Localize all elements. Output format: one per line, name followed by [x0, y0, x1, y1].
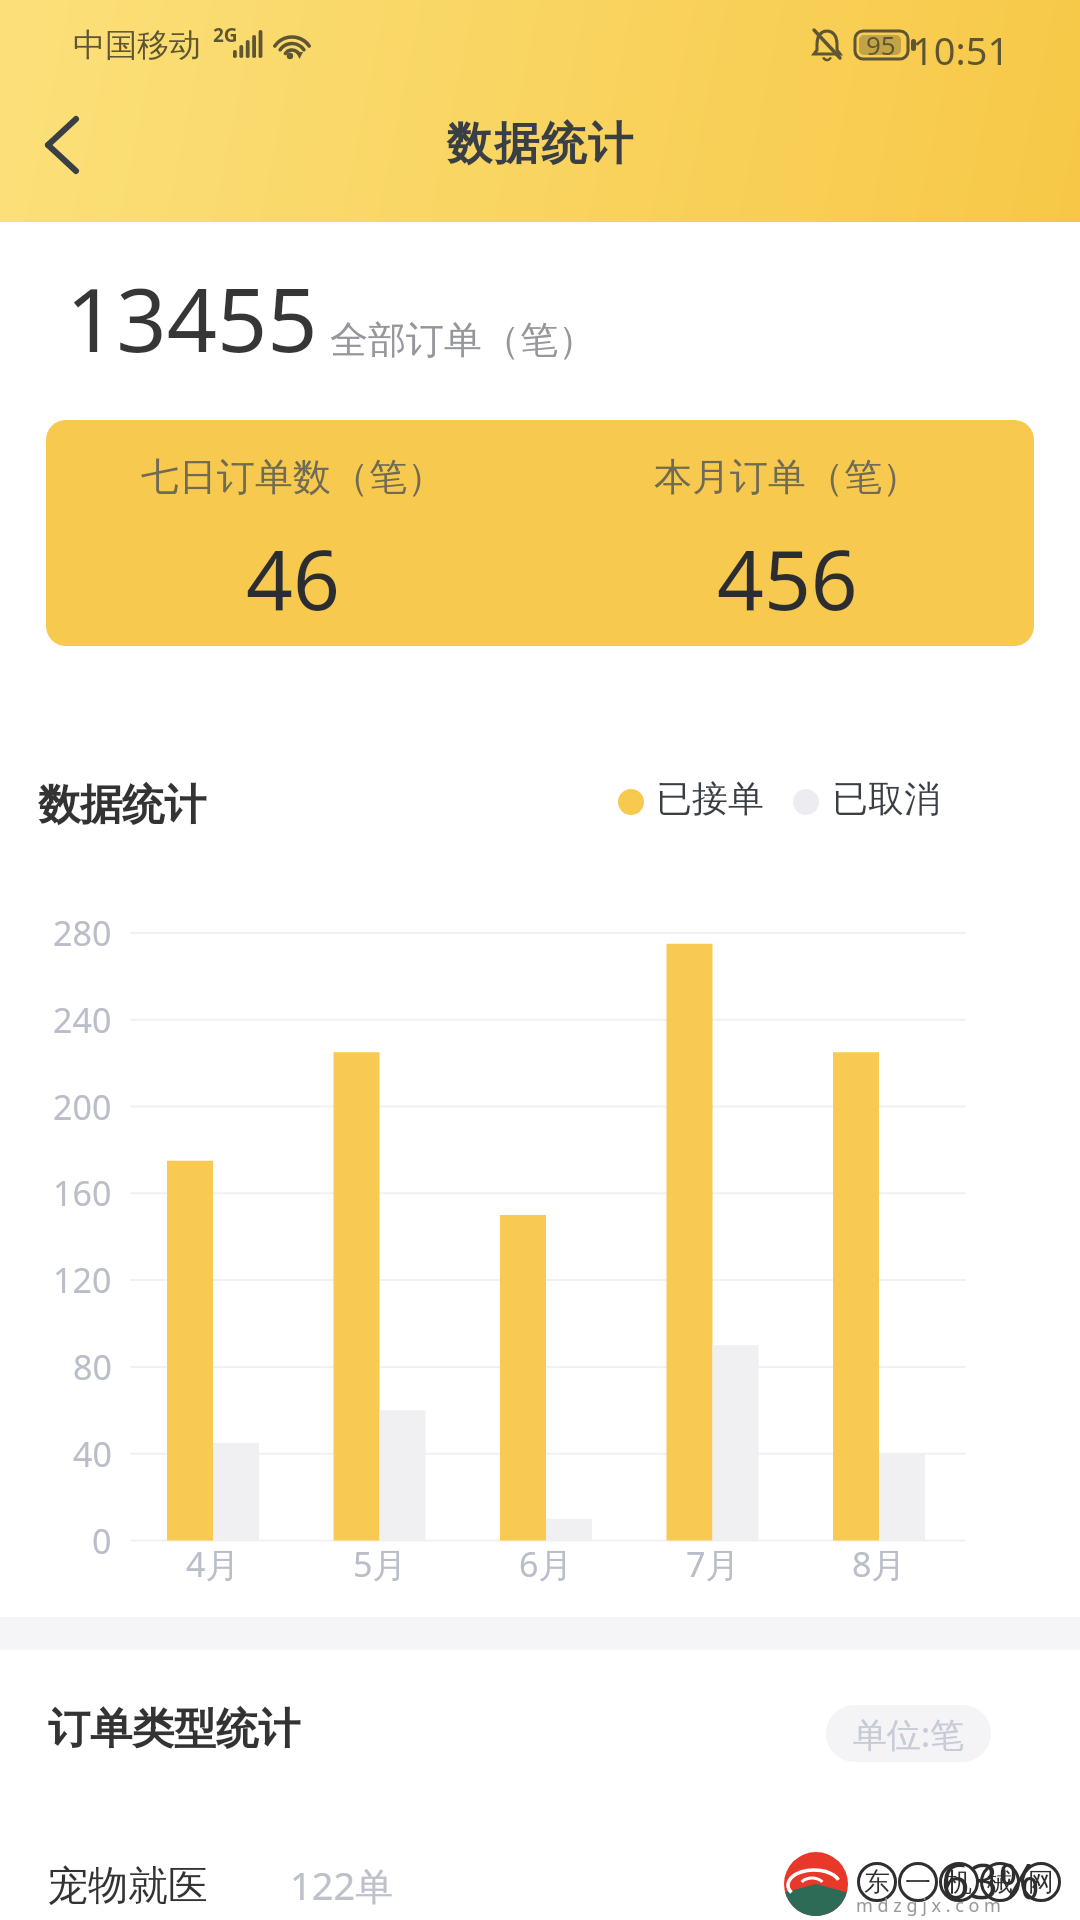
staticText: 4月	[186, 1541, 240, 1587]
staticText: 160	[53, 1170, 112, 1216]
staticText: 46	[246, 522, 340, 634]
staticText: 东	[864, 1866, 890, 1899]
staticText: 七日订单数（笔）	[141, 453, 445, 501]
staticText: 95	[866, 27, 896, 62]
staticText: 2G	[213, 22, 238, 48]
staticText: 械	[987, 1866, 1013, 1899]
staticText: 5月	[353, 1541, 407, 1587]
staticText: 7月	[686, 1541, 740, 1587]
staticText: 订单类型统计	[48, 1703, 300, 1756]
staticText: 120	[53, 1257, 112, 1303]
staticText: 8月	[852, 1541, 906, 1587]
staticText: 机	[946, 1866, 972, 1899]
staticText: 已接单	[656, 776, 764, 821]
button[interactable]: 七日订单数（笔）	[46, 420, 1034, 646]
staticText: 一	[905, 1866, 931, 1899]
staticText: 13455	[66, 258, 318, 378]
staticText: 中国移动	[73, 25, 201, 65]
staticText: 已取消	[832, 776, 940, 821]
staticText: 数据统计	[446, 116, 634, 173]
staticText: 宠物就医	[48, 1860, 208, 1910]
staticText: 6月	[519, 1541, 573, 1587]
staticText: 122单	[290, 1859, 394, 1911]
staticText: 456	[717, 522, 858, 634]
staticText: 本月订单（笔）	[654, 453, 920, 501]
staticText: 63%	[941, 1846, 1040, 1914]
button[interactable]: 宠物就医	[0, 1850, 1080, 1920]
staticText: 80	[73, 1344, 112, 1390]
button[interactable]	[46, 119, 78, 171]
staticText: 200	[53, 1084, 112, 1130]
staticText: 单位:笔	[853, 1711, 965, 1757]
staticText: 网	[1028, 1866, 1054, 1899]
staticText: 40	[73, 1431, 112, 1477]
staticText: 0	[92, 1518, 112, 1564]
staticText: 10:51	[912, 24, 1010, 76]
staticText: 全部订单（笔）	[330, 316, 596, 364]
staticText: m d z g j x . c o m	[856, 1893, 1001, 1918]
staticText: 240	[53, 997, 112, 1043]
staticText: 数据统计	[38, 779, 206, 832]
staticText: 280	[53, 910, 112, 956]
